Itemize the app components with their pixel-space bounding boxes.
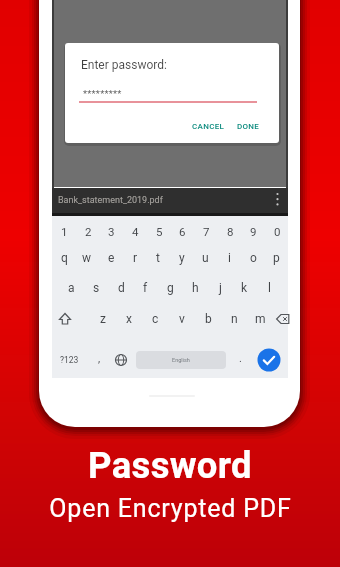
staticText: v <box>179 312 185 326</box>
staticText: q <box>61 251 68 265</box>
staticText: 9 <box>250 225 257 238</box>
staticText: 6 <box>179 225 186 238</box>
staticText: f <box>143 281 148 295</box>
staticText: c <box>152 312 159 326</box>
staticText: CANCEL <box>192 122 225 131</box>
staticText: 0 <box>274 225 281 238</box>
staticText: DONE <box>237 122 260 131</box>
staticText: s <box>93 281 100 295</box>
staticText: x <box>126 312 132 326</box>
staticText: n <box>231 312 238 326</box>
staticText: j <box>219 281 222 295</box>
staticText: Open Encrypted PDF <box>49 494 292 523</box>
staticText: w <box>82 251 92 265</box>
staticText: d <box>118 281 125 295</box>
staticText: e <box>108 251 115 265</box>
staticText: Password <box>88 444 252 487</box>
staticText: 5 <box>156 225 163 238</box>
staticText: ?123 <box>60 355 79 365</box>
staticText: ********* <box>83 88 122 99</box>
staticText: , <box>98 352 101 365</box>
staticText: 4 <box>132 225 139 238</box>
staticText: Enter password: <box>81 58 167 72</box>
staticText: t <box>156 251 160 265</box>
staticText: 7 <box>203 225 210 238</box>
staticText: y <box>179 251 185 265</box>
staticText: h <box>192 281 199 295</box>
staticText: z <box>100 312 106 326</box>
staticText: 8 <box>227 225 234 238</box>
staticText: 3 <box>108 225 115 238</box>
staticText: p <box>273 251 280 265</box>
staticText: a <box>68 281 75 295</box>
staticText: i <box>228 251 231 265</box>
staticText: 1 <box>61 225 68 238</box>
staticText: k <box>241 281 248 295</box>
staticText: . <box>239 352 242 365</box>
staticText: u <box>202 251 209 265</box>
staticText: English <box>172 357 190 363</box>
staticText: l <box>268 281 271 295</box>
staticText: b <box>205 312 212 326</box>
staticText: Bank_statement_2019.pdf <box>58 195 163 206</box>
staticText: o <box>250 251 257 265</box>
staticText: r <box>133 251 138 265</box>
staticText: 2 <box>85 225 92 238</box>
staticText: m <box>255 312 266 326</box>
staticText: g <box>167 281 174 295</box>
